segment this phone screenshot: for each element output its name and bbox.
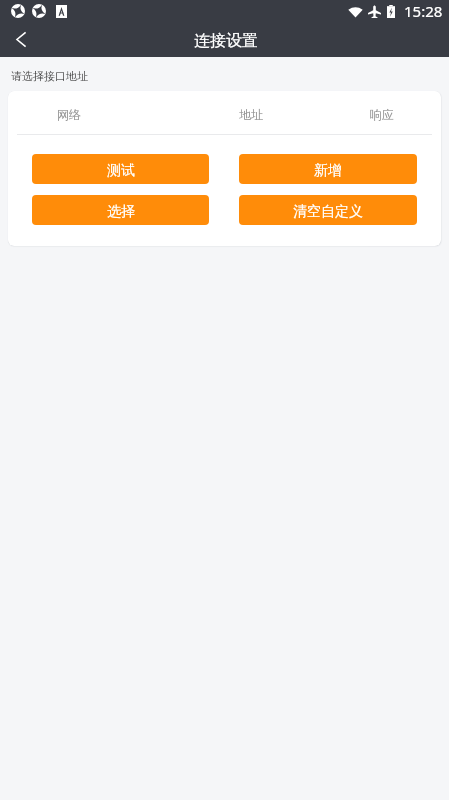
staticText: 15:28 [404, 1, 443, 21]
button[interactable]: Back [0, 22, 39, 57]
button[interactable]: 清空自定义 [239, 195, 417, 225]
button[interactable]: 测试 [32, 154, 209, 184]
staticText: 响应 [370, 107, 394, 122]
button[interactable]: 新增 [239, 154, 417, 184]
staticText: 新增 [314, 162, 342, 180]
staticText: 选择 [107, 203, 135, 221]
staticText: 请选择接口地址 [11, 69, 88, 83]
staticText: 网络 [57, 107, 81, 122]
staticText: 清空自定义 [293, 203, 363, 221]
staticText: 连接设置 [194, 31, 258, 51]
staticText: 地址 [239, 107, 263, 122]
staticText: 测试 [107, 162, 135, 180]
button[interactable]: 选择 [32, 195, 209, 225]
